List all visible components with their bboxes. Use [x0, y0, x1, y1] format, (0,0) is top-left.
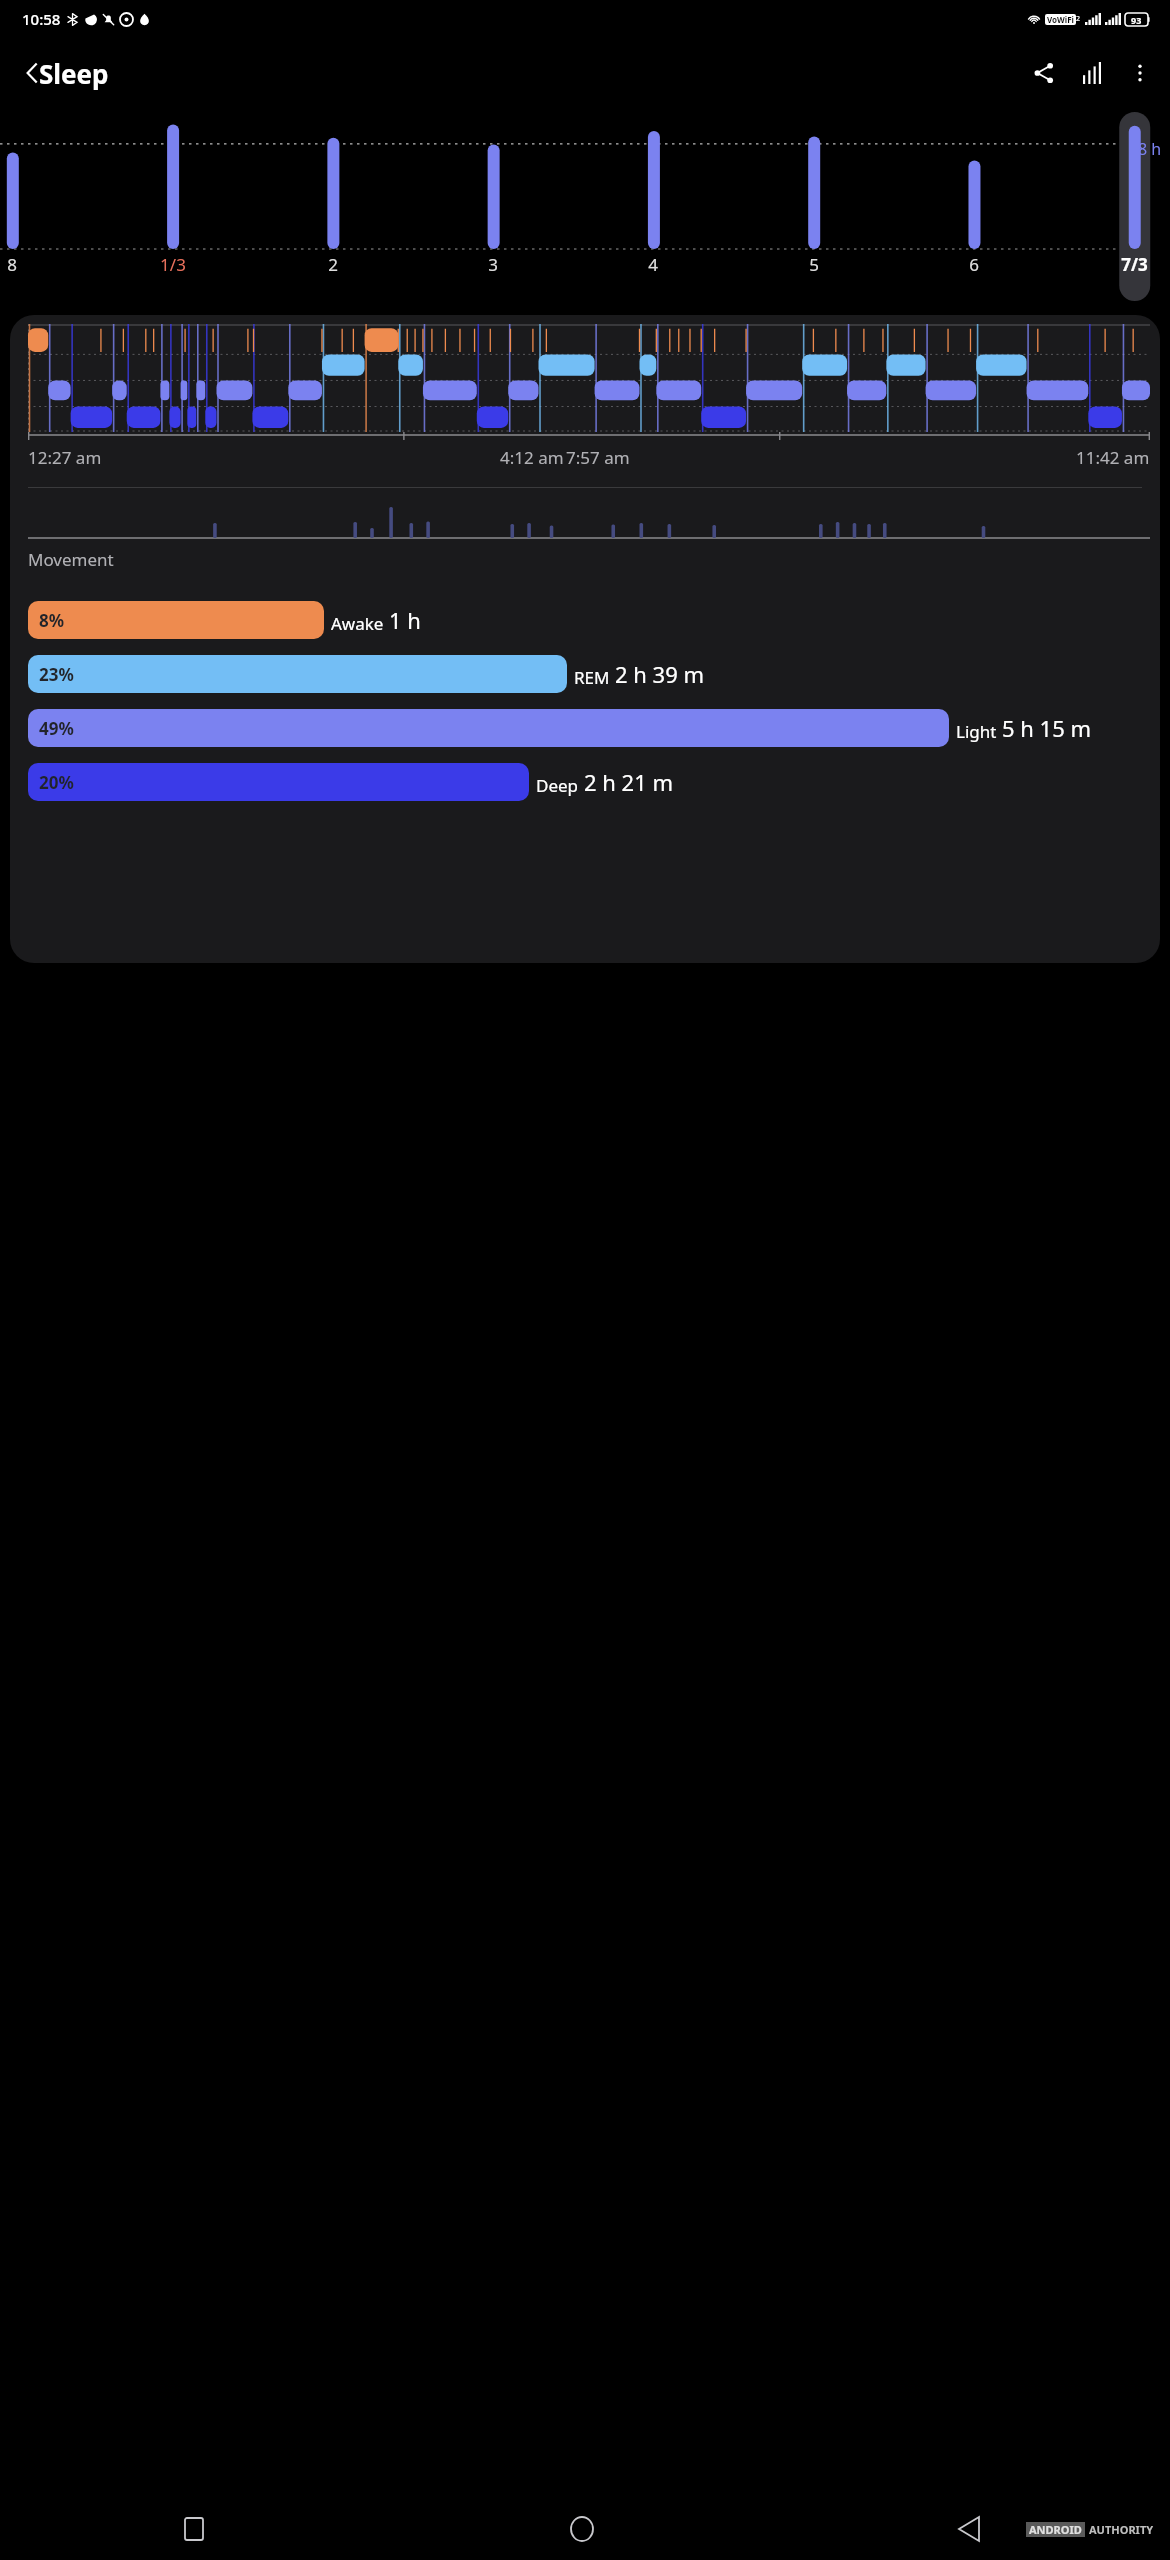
button[interactable]: 23% [28, 655, 1146, 693]
staticText: 1/3 [160, 253, 186, 276]
staticText: 23% [39, 663, 74, 686]
staticText: 3 [488, 253, 498, 276]
button[interactable]: Share [1020, 49, 1068, 97]
staticText: 1 h [389, 605, 421, 635]
staticText: 2 h 21 m [584, 767, 674, 797]
staticText: 8% [39, 609, 65, 632]
staticText: Light [956, 720, 997, 743]
button[interactable]: Home [388, 2498, 775, 2560]
staticText: VoWiFi [1047, 14, 1074, 25]
staticText: Awake [331, 612, 384, 635]
button[interactable]: Recents [0, 2498, 388, 2560]
staticText: 7:57 am [566, 446, 630, 469]
staticText: 2 h 39 m [615, 659, 705, 689]
staticText: 4:12 am [500, 446, 564, 469]
button[interactable]: 49% [28, 709, 1146, 747]
staticText: 8 [7, 253, 17, 276]
staticText: 2 [328, 253, 338, 276]
staticText: 93 [1131, 14, 1142, 26]
staticText: Movement [28, 548, 114, 571]
staticText: 4 [648, 253, 658, 276]
button[interactable]: Back [775, 2498, 1162, 2560]
staticText: 8 h [1138, 138, 1162, 160]
button[interactable]: Back [8, 49, 56, 97]
staticText: 7/3 [1121, 253, 1148, 276]
staticText: 5 h 15 m [1002, 713, 1092, 743]
staticText: Deep [536, 774, 579, 797]
staticText: 2 [1076, 14, 1081, 24]
staticText: 11:42 am [1076, 446, 1150, 469]
button[interactable]: More options [1116, 49, 1164, 97]
staticText: 5 [809, 253, 819, 276]
button[interactable]: Statistics [1068, 49, 1116, 97]
button[interactable]: 12:27 am [10, 315, 1160, 963]
staticText: Sleep [39, 56, 109, 91]
staticText: ANDROID [1029, 2522, 1082, 2537]
staticText: REM [574, 666, 610, 689]
staticText: 10:58 [22, 9, 61, 29]
staticText: 12:27 am [28, 446, 102, 469]
staticText: 20% [39, 771, 74, 794]
staticText: AUTHORITY [1089, 2522, 1154, 2537]
staticText: 6 [969, 253, 979, 276]
staticText: 49% [39, 717, 74, 740]
button[interactable]: 8% [28, 601, 1146, 639]
button[interactable]: 20% [28, 763, 1146, 801]
